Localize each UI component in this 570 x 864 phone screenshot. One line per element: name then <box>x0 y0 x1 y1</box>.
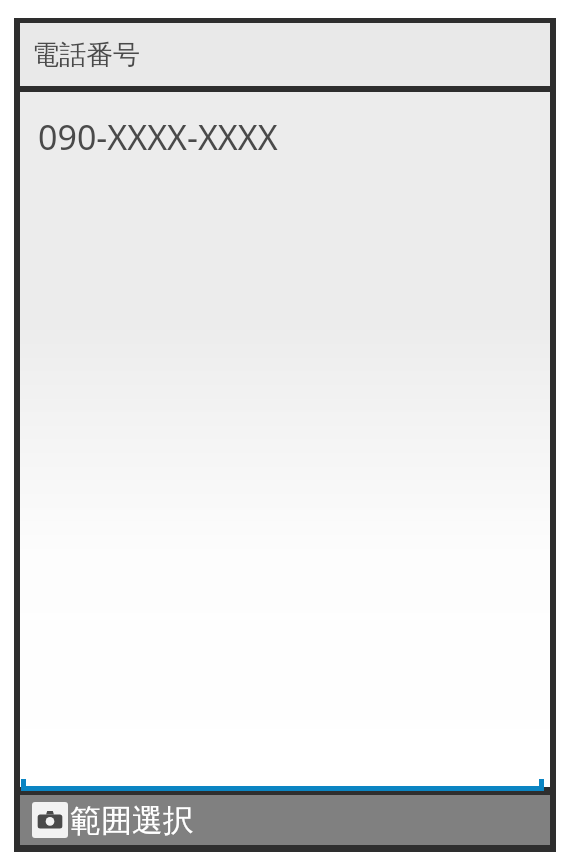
other: Camera <box>32 802 68 838</box>
button[interactable]: 090-XXXX-XXXX <box>20 92 550 787</box>
button[interactable]: 電話番号 <box>20 23 550 86</box>
button[interactable]: Camera <box>20 795 550 845</box>
staticText: 電話番号 <box>32 38 140 72</box>
staticText: 範囲選択 <box>70 801 194 840</box>
staticText: 090-XXXX-XXXX <box>38 114 278 160</box>
